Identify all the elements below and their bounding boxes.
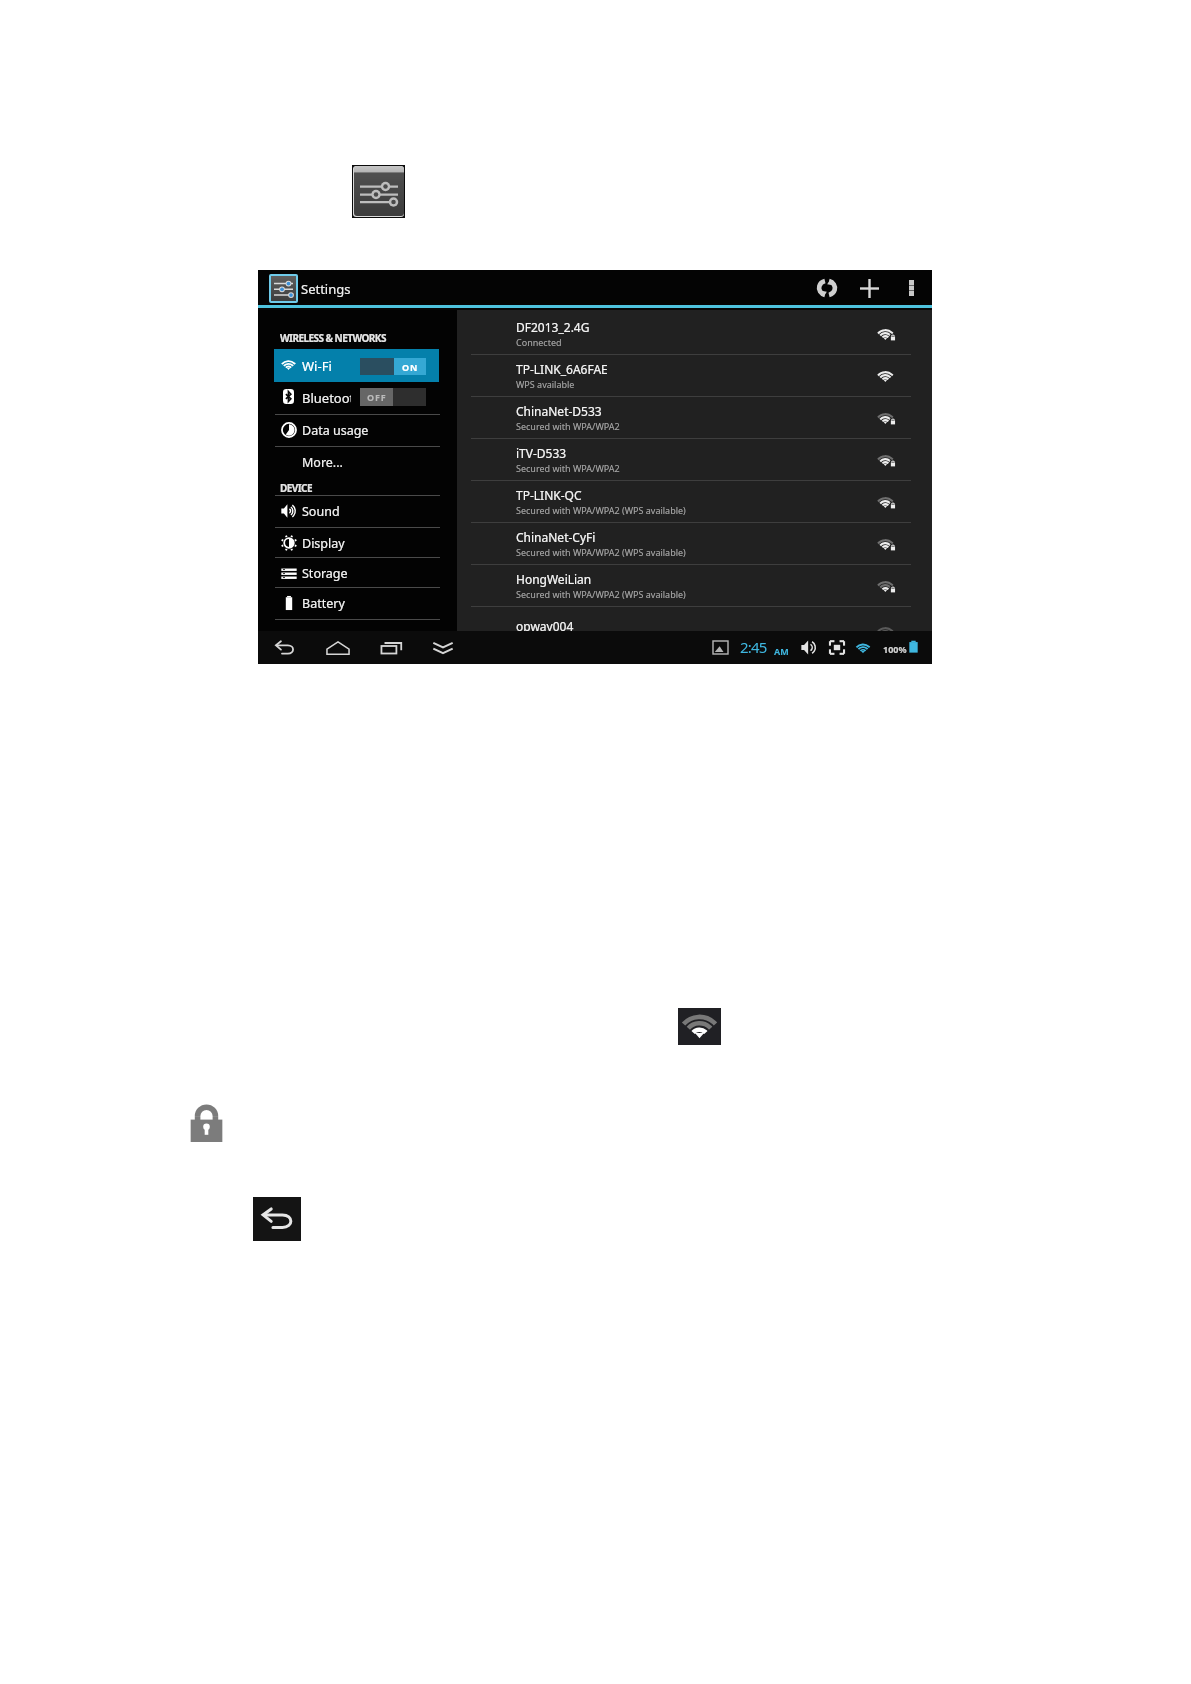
button[interactable]: ChinaNet-D533 (457, 396, 932, 438)
staticText: ChinaNet-D533 (516, 403, 602, 419)
staticText: Wi-Fi (302, 357, 332, 375)
button[interactable]: Sound (258, 496, 457, 526)
button[interactable]: TP-LINK-QC (457, 480, 932, 522)
staticText: iTV-D533 (516, 445, 567, 461)
button[interactable]: Settings app icon (352, 165, 405, 218)
staticText: Bluetooth (302, 389, 351, 406)
button[interactable]: More... (258, 447, 457, 477)
staticText: ChinaNet-CyFi (516, 529, 596, 545)
staticText: DF2013_2.4G (516, 319, 590, 335)
staticText: AM (774, 645, 789, 657)
button[interactable]: Back (253, 1197, 301, 1241)
button[interactable]: Secured network (190, 1102, 223, 1142)
staticText: 2:45 (740, 637, 767, 657)
staticText: Settings (301, 280, 351, 298)
staticText: Secured with WPA/WPA2 (516, 462, 620, 474)
staticText: Secured with WPA/WPA2 (WPS available) (516, 504, 686, 516)
staticText: DEVICE (280, 481, 313, 495)
button[interactable]: Add network (856, 275, 882, 301)
staticText: HongWeiLian (516, 571, 592, 587)
button[interactable]: Settings (269, 274, 298, 303)
staticText: TP-LINK_6A6FAE (516, 361, 608, 377)
staticText: OFF (367, 391, 387, 403)
button[interactable]: Bluetooth (258, 381, 457, 413)
staticText: ON (402, 361, 419, 373)
staticText: TP-LINK-QC (516, 487, 582, 503)
staticText: Connected (516, 336, 562, 348)
button[interactable]: Wi-Fi signal (678, 1008, 721, 1045)
staticText: Secured with WPA/WPA2 (WPS available) (516, 588, 686, 600)
button[interactable]: More options (900, 277, 922, 299)
button[interactable]: Home (325, 631, 351, 664)
staticText: Data usage (302, 422, 369, 439)
button[interactable]: ChinaNet-CyFi (457, 522, 932, 564)
button[interactable]: Recent apps (379, 631, 405, 664)
button[interactable]: TP-LINK_6A6FAE (457, 354, 932, 396)
button[interactable]: Wi-Fi (274, 349, 439, 382)
staticText: WPS available (516, 378, 575, 390)
staticText: Battery (302, 595, 345, 612)
staticText: 100% (883, 643, 907, 655)
button[interactable]: Battery (258, 588, 457, 618)
staticText: Display (302, 535, 345, 552)
staticText: WIRELESS & NETWORKS (280, 331, 386, 345)
button[interactable]: Display (258, 528, 457, 558)
staticText: opway004 (516, 618, 574, 631)
button[interactable]: DF2013_2.4G (457, 312, 932, 354)
staticText: Secured with WPA/WPA2 (WPS available) (516, 546, 686, 558)
button[interactable]: Scan for networks (814, 275, 840, 301)
button[interactable]: Storage (258, 558, 457, 588)
button[interactable]: Notifications (430, 631, 456, 664)
button[interactable]: iTV-D533 (457, 438, 932, 480)
staticText: More... (302, 454, 343, 471)
button[interactable]: Back (271, 631, 297, 664)
button[interactable]: HongWeiLian (457, 564, 932, 606)
staticText: Storage (302, 565, 348, 582)
staticText: Sound (302, 503, 340, 520)
staticText: Secured with WPA/WPA2 (516, 420, 620, 432)
button[interactable]: Data usage (258, 415, 457, 445)
